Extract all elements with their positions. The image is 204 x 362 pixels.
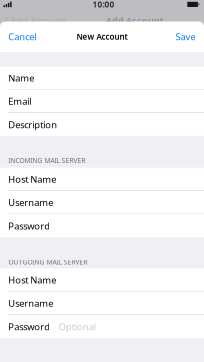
staticText: OUTGOING MAIL SERVER <box>8 258 87 266</box>
staticText: Password <box>8 320 50 333</box>
staticText: Username <box>8 196 53 208</box>
staticText: Host Name <box>8 274 56 286</box>
staticText: Password <box>8 220 50 232</box>
button[interactable]: Password <box>0 214 204 237</box>
button[interactable]: Host Name <box>0 268 204 292</box>
staticText: Email <box>8 95 31 107</box>
staticText: Cancel <box>8 31 36 43</box>
staticText: Username <box>8 297 53 309</box>
staticText: Save <box>175 31 195 43</box>
staticText: INCOMING MAIL SERVER <box>8 156 85 165</box>
button[interactable]: Email <box>0 90 204 113</box>
staticText: Optional <box>59 320 96 333</box>
button[interactable]: Description <box>0 113 204 136</box>
staticText: 10:00 <box>92 0 114 10</box>
staticText: New Account <box>76 31 127 42</box>
button[interactable]: Username <box>0 191 204 214</box>
button[interactable]: Host Name <box>0 168 204 191</box>
button[interactable]: Password <box>0 315 204 338</box>
button[interactable]: Cancel <box>0 22 43 52</box>
button[interactable]: Username <box>0 292 204 315</box>
button[interactable]: Name <box>0 66 204 90</box>
staticText: Add Account <box>106 14 164 27</box>
button[interactable]: Save <box>168 22 204 52</box>
staticText: Add Account <box>10 14 65 27</box>
staticText: Host Name <box>8 173 56 185</box>
staticText: Name <box>8 72 34 84</box>
staticText: Description <box>8 118 57 131</box>
